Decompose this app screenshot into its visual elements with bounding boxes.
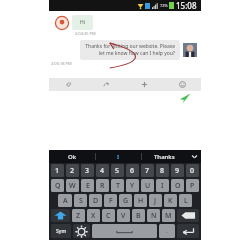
button[interactable]: 5 [111, 164, 124, 177]
button[interactable]: Enter [177, 224, 199, 238]
staticText: Hi [80, 19, 85, 26]
staticText: G [123, 196, 129, 206]
button[interactable]: Q [51, 179, 64, 192]
button[interactable]: Z [72, 209, 85, 222]
staticText: J [154, 196, 157, 206]
staticText: 2:05:18 PM [51, 61, 72, 66]
button[interactable]: Space [92, 224, 157, 238]
button[interactable]: I [96, 150, 141, 163]
button[interactable]: 2 [66, 164, 79, 177]
staticText: M [165, 211, 172, 221]
button[interactable]: Hide keyboard [187, 150, 201, 163]
staticText: 0 [190, 166, 195, 176]
staticText: 2 [70, 166, 75, 176]
staticText: C [106, 211, 111, 221]
staticText: F [109, 196, 113, 206]
button[interactable]: T [111, 179, 124, 192]
staticText: R [100, 181, 105, 191]
staticText: S [79, 196, 83, 206]
button[interactable]: A [58, 194, 72, 207]
staticText: A [63, 196, 68, 206]
button[interactable]: Attach [49, 78, 87, 91]
button[interactable]: Send [179, 92, 191, 104]
button[interactable]: B [132, 209, 145, 222]
staticText: 6 [130, 166, 135, 176]
staticText: B [136, 211, 141, 221]
button[interactable]: I [156, 179, 169, 192]
button[interactable]: U [141, 179, 154, 192]
button[interactable]: 1 [51, 164, 64, 177]
staticText: Ok [68, 153, 77, 161]
staticText: 72% [160, 3, 168, 8]
staticText: D [93, 196, 99, 206]
button[interactable]: Settings [73, 224, 90, 238]
button[interactable]: P [186, 179, 199, 192]
staticText: W [69, 181, 76, 191]
button[interactable]: Shift [51, 209, 70, 222]
button[interactable]: C [102, 209, 115, 222]
button[interactable]: 9 [171, 164, 184, 177]
staticText: Y [130, 181, 135, 191]
staticText: U [145, 181, 151, 191]
button[interactable]: K [164, 194, 177, 207]
staticText: K [168, 196, 173, 206]
button[interactable]: . [159, 224, 175, 238]
button[interactable]: Emoji [163, 78, 201, 91]
staticText: I [161, 181, 164, 191]
button[interactable]: 3 [81, 164, 94, 177]
staticText: Thanks [154, 153, 175, 161]
button[interactable]: O [171, 179, 184, 192]
button[interactable]: J [149, 194, 162, 207]
staticText: 2:04:25 PM [75, 31, 96, 36]
button[interactable]: L [179, 194, 192, 207]
staticText: X [91, 211, 96, 221]
button[interactable]: N [147, 209, 160, 222]
button[interactable]: D [89, 194, 102, 207]
staticText: N [151, 211, 157, 221]
button[interactable]: M [162, 209, 175, 222]
staticText: 4 [100, 166, 105, 176]
staticText: E [86, 181, 90, 191]
button[interactable]: E [81, 179, 94, 192]
staticText: Thanks for visiting our website. Please … [85, 43, 175, 57]
button[interactable]: H [134, 194, 147, 207]
staticText: V [121, 211, 126, 221]
button[interactable]: 7 [141, 164, 154, 177]
button[interactable]: V [117, 209, 130, 222]
button[interactable]: 8 [156, 164, 169, 177]
staticText: T [116, 181, 120, 191]
button[interactable]: Thanks [142, 150, 187, 163]
staticText: Z [76, 211, 81, 221]
staticText: I [117, 153, 120, 161]
staticText: 3 [85, 166, 90, 176]
staticText: 15:08 [176, 0, 197, 11]
staticText: H [138, 196, 144, 206]
button[interactable]: 4 [96, 164, 109, 177]
staticText: 8 [160, 166, 165, 176]
button[interactable]: S [74, 194, 87, 207]
button[interactable]: Forward [87, 78, 125, 91]
staticText: 5 [115, 166, 120, 176]
staticText: Q [55, 181, 61, 191]
staticText: 7 [145, 166, 150, 176]
button[interactable]: Ok [49, 150, 95, 163]
staticText: 1 [55, 166, 60, 176]
staticText: L [184, 196, 188, 206]
button[interactable]: F [104, 194, 117, 207]
button[interactable]: 6 [126, 164, 139, 177]
staticText: P [190, 181, 195, 191]
staticText: O [175, 181, 181, 191]
button[interactable]: Y [126, 179, 139, 192]
button[interactable]: Sym [51, 224, 71, 238]
button[interactable]: Add [125, 78, 163, 91]
button[interactable]: Backspace [177, 209, 199, 222]
button[interactable]: X [87, 209, 100, 222]
staticText: . [166, 227, 168, 235]
button[interactable]: W [66, 179, 79, 192]
button[interactable]: G [119, 194, 132, 207]
staticText: 9 [175, 166, 180, 176]
staticText: Sym [56, 228, 67, 235]
button[interactable]: 0 [186, 164, 199, 177]
button[interactable]: R [96, 179, 109, 192]
